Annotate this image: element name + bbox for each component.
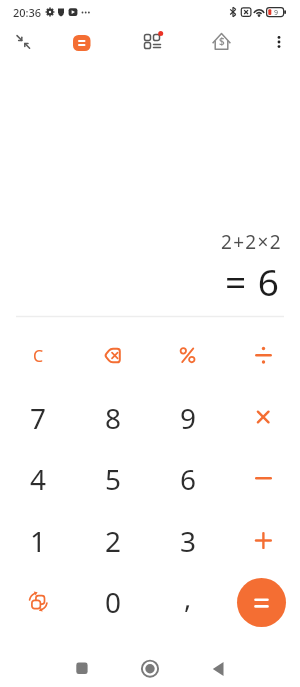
button[interactable]: 2 [76,510,150,571]
staticText: 1 [30,522,47,560]
button[interactable] [151,325,225,386]
button[interactable]: C [1,325,75,386]
button[interactable]: 7 [1,387,75,448]
staticText: 2+2×2 [221,229,282,255]
staticText: 2 [105,522,122,560]
button[interactable] [226,387,300,448]
button[interactable] [140,28,166,54]
button[interactable] [10,30,36,56]
button[interactable]: 8 [76,387,150,448]
staticText: 3 [180,522,197,560]
button[interactable] [1,571,75,632]
button[interactable] [226,510,300,571]
button[interactable]: 9 [151,387,225,448]
button[interactable] [237,578,286,627]
button[interactable] [268,30,290,54]
staticText: 5 [105,460,122,498]
button[interactable] [226,325,300,386]
staticText: = 6 [225,256,280,302]
button[interactable]: 4 [1,448,75,509]
staticText: 9 [180,399,197,437]
button[interactable]: 5 [76,448,150,509]
staticText: $ [219,34,225,48]
button[interactable]: 1 [1,510,75,571]
button[interactable] [62,648,102,687]
button[interactable] [198,648,238,687]
staticText: 9 [274,8,279,18]
button[interactable] [73,35,91,51]
staticText: 20:36 [13,5,42,20]
staticText: 7 [30,399,47,437]
staticText: , [184,579,192,616]
staticText: 4 [30,460,47,498]
staticText: 6 [180,460,197,498]
button[interactable]: 6 [151,448,225,509]
button[interactable] [226,448,300,509]
staticText: 0 [105,583,122,621]
button[interactable] [76,325,150,386]
button[interactable]: , [151,571,225,632]
staticText: 8 [105,399,122,437]
button[interactable]: 0 [76,571,150,632]
staticText: C [33,345,44,367]
button[interactable]: 3 [151,510,225,571]
button[interactable] [130,648,170,687]
button[interactable]: $ [208,28,235,54]
